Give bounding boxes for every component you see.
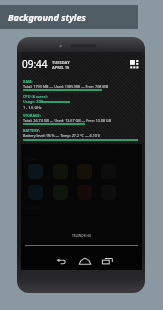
staticText: TELENOR HU (21, 234, 142, 238)
staticText: STORAGE: (23, 113, 41, 118)
button[interactable]: App (28, 185, 43, 200)
staticText: 1 - 1.6 GHz (23, 105, 42, 110)
staticText: CPU (4 cores): (23, 94, 48, 99)
button[interactable]: App (77, 164, 92, 179)
staticText: TUESDAY (52, 60, 70, 65)
staticText: Battery level: 95 % — Temp: 27.2 °C — 4.… (23, 133, 101, 138)
button[interactable]: App (77, 185, 92, 200)
staticText: Total: 26.74 GB — Used: 13.67 GB — Free:… (23, 118, 112, 123)
button[interactable]: Home (73, 254, 96, 268)
staticText: Total: 1793 MB — Used: 1085 MB — Free: 7… (23, 84, 109, 89)
staticText: APRIL 15 (52, 65, 70, 70)
staticText: BATTERY: (23, 128, 40, 133)
button[interactable]: Widgets (130, 60, 139, 69)
button[interactable]: Back (49, 254, 73, 268)
button[interactable]: Recents (96, 254, 119, 268)
button[interactable]: App (28, 164, 43, 179)
staticText: RAM: (23, 79, 33, 84)
button[interactable]: App (53, 185, 68, 200)
staticText: Background styles (8, 11, 86, 23)
staticText: 09:44 (22, 57, 48, 71)
staticText: Usage: 20% (23, 99, 44, 104)
